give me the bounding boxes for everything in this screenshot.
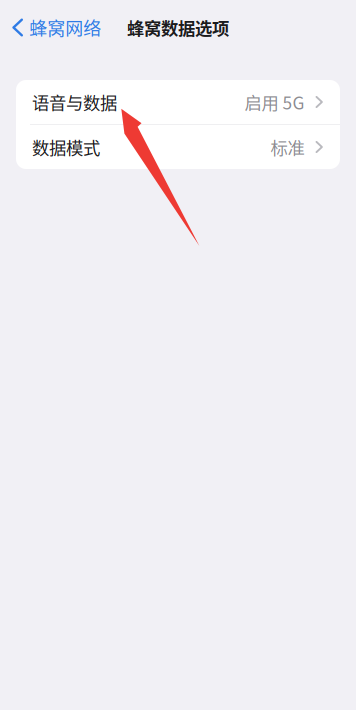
staticText: 蜂窝网络 (29, 14, 101, 41)
staticText: 语音与数据 (32, 89, 117, 115)
button[interactable]: 语音与数据 (16, 80, 340, 124)
staticText: 蜂窝数据选项 (127, 15, 229, 40)
button[interactable]: 数据模式 (16, 125, 340, 169)
button[interactable]: 蜂窝网络 (0, 8, 109, 47)
staticText: 标准 (270, 134, 304, 160)
staticText: 启用 5G (244, 89, 304, 115)
staticText: 数据模式 (32, 134, 100, 160)
